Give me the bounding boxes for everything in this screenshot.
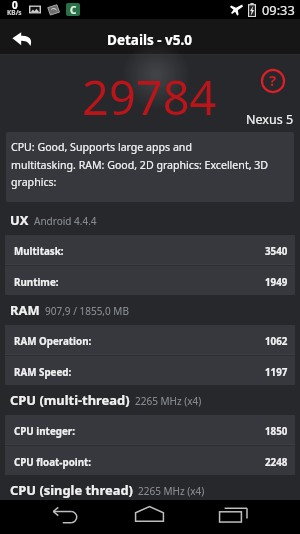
button[interactable]: Runtime: (5, 266, 295, 295)
staticText: 907,9 / 1855,0 MB (45, 304, 129, 318)
button[interactable]: Home (120, 500, 180, 530)
staticText: 3540 (265, 245, 288, 258)
staticText: RAM Operation: (14, 335, 92, 348)
staticText: UX (10, 211, 29, 229)
button[interactable]: Multitask: (5, 235, 295, 264)
staticText: CPU integer: (14, 425, 75, 438)
staticText: 09:33 (262, 1, 295, 18)
staticText: Runtime: (14, 276, 59, 289)
button[interactable]: CPU integer: (5, 415, 295, 444)
staticText: CPU (multi-thread) (10, 391, 130, 409)
staticText: Multitask: (14, 245, 64, 258)
staticText: 1197 (265, 366, 288, 379)
button[interactable]: Back (35, 500, 95, 530)
staticText: 1062 (265, 335, 288, 348)
staticText: RAM (10, 301, 40, 319)
button[interactable]: Back (6, 21, 38, 53)
staticText: 2248 (265, 456, 288, 469)
staticText: 1949 (265, 276, 288, 289)
staticText: ? (269, 70, 277, 90)
staticText: 0 (12, 0, 18, 12)
staticText: KB/s (7, 8, 22, 17)
staticText: 2265 MHz (x4) (138, 484, 205, 498)
button[interactable]: Help (261, 69, 285, 93)
staticText: RAM Speed: (14, 366, 72, 379)
button[interactable]: CPU float-point: (5, 446, 295, 475)
staticText: Details - v5.0 (107, 31, 193, 49)
staticText: 1850 (265, 425, 288, 438)
staticText: C (70, 3, 77, 16)
staticText: Android 4.4.4 (34, 214, 97, 228)
staticText: CPU float-point: (14, 456, 92, 469)
staticText: Nexus 5 (246, 111, 294, 128)
button[interactable]: RAM Operation: (5, 325, 295, 354)
button[interactable]: Recents (203, 500, 263, 530)
staticText: 2265 MHz (x4) (135, 394, 202, 408)
staticText: 29784 (82, 65, 217, 129)
staticText: CPU Sha1: (14, 515, 63, 528)
button[interactable]: RAM Speed: (5, 356, 295, 385)
staticText: CPU: Good, Supports large apps and multi… (11, 140, 290, 189)
staticText: CPU (single thread) (10, 481, 133, 499)
button[interactable]: CPU Sha1: (5, 505, 295, 534)
